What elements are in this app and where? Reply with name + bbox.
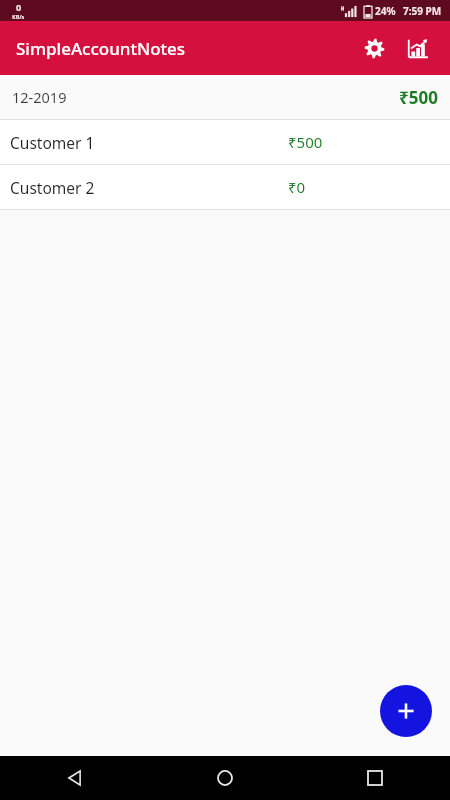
staticText: Customer 2 [10, 177, 288, 198]
staticText: Customer 1 [10, 132, 288, 153]
staticText: 12-2019 [12, 87, 67, 107]
button[interactable]: Add [380, 685, 432, 737]
staticText: KB/s [12, 13, 25, 20]
staticText: 7:59 PM [403, 4, 442, 18]
button[interactable]: Customer 2 [0, 165, 450, 209]
staticText: ₹500 [399, 86, 438, 109]
button[interactable]: Settings [352, 26, 396, 70]
staticText: ₹500 [288, 132, 450, 152]
button[interactable]: Back [0, 756, 150, 800]
button[interactable]: Customer 1 [0, 120, 450, 164]
staticText: SimpleAccountNotes [16, 37, 186, 60]
button[interactable]: Statistics [396, 26, 440, 70]
staticText: 0 [16, 1, 22, 13]
button[interactable]: 12-2019 [0, 75, 450, 119]
staticText: 24% [375, 4, 396, 18]
staticText: ₹0 [288, 177, 450, 197]
button[interactable]: Recent apps [300, 756, 450, 800]
button[interactable]: Home [150, 756, 300, 800]
